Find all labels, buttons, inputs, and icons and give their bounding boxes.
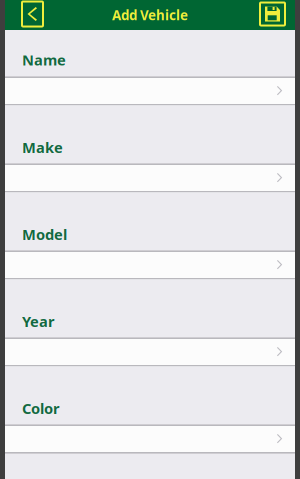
staticText: Add Vehicle <box>112 6 188 24</box>
button[interactable]: Save <box>260 2 285 25</box>
button[interactable]: Model <box>5 250 295 279</box>
button[interactable]: Make <box>5 163 295 192</box>
staticText: Make <box>22 137 63 157</box>
staticText: Year <box>22 311 55 331</box>
staticText: Model <box>22 224 67 244</box>
button[interactable]: Back <box>22 1 43 26</box>
button[interactable]: Name <box>5 76 295 105</box>
button[interactable]: Color <box>5 424 295 453</box>
staticText: Name <box>22 50 66 69</box>
button[interactable]: Year <box>5 337 295 366</box>
staticText: Color <box>22 398 60 418</box>
